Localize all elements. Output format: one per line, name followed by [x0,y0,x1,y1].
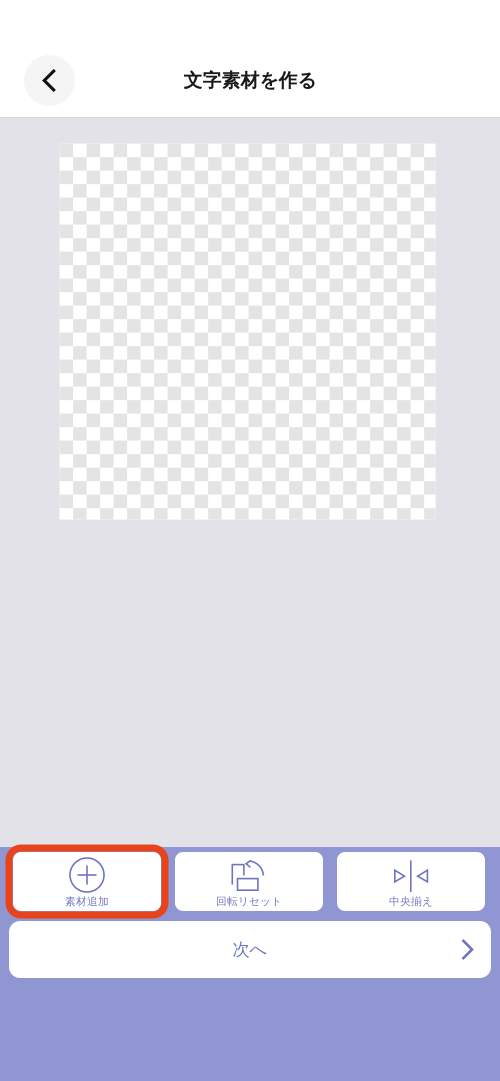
button[interactable]: Back [24,55,75,106]
staticText: 次へ [232,939,267,960]
staticText: 回転リセット [216,895,282,908]
button[interactable]: 回転リセット [175,852,323,911]
staticText: 素材追加 [65,895,109,908]
button[interactable]: 次へ [9,921,491,978]
staticText: 中央揃え [389,895,433,908]
staticText: 文字素材を作る [183,69,316,92]
button[interactable]: 中央揃え [337,852,485,911]
button[interactable]: 素材追加 [13,852,161,911]
